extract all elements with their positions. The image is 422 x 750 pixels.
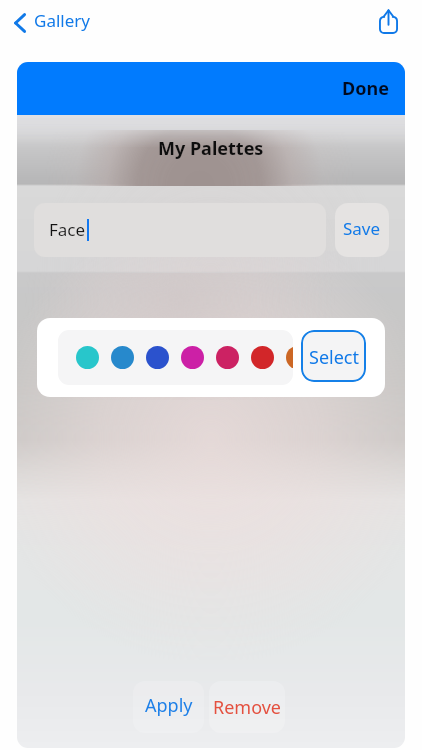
staticText: Done bbox=[342, 76, 389, 101]
button[interactable]: Remove bbox=[209, 681, 285, 733]
staticText: Select bbox=[309, 345, 359, 370]
button[interactable]: Face bbox=[34, 203, 326, 257]
button[interactable]: Select bbox=[301, 330, 366, 382]
button[interactable]: Apply bbox=[133, 681, 204, 733]
staticText: Face bbox=[49, 218, 86, 241]
staticText: Remove bbox=[213, 695, 282, 720]
button[interactable]: Save bbox=[335, 203, 389, 257]
button[interactable]: Done bbox=[17, 62, 405, 115]
staticText: My Palettes bbox=[158, 136, 264, 160]
button[interactable] bbox=[58, 330, 293, 385]
button[interactable]: Share bbox=[373, 5, 404, 38]
staticText: Gallery bbox=[34, 9, 90, 32]
staticText: Save bbox=[343, 217, 381, 240]
button[interactable]: Gallery bbox=[9, 5, 95, 40]
staticText: Apply bbox=[145, 693, 193, 718]
